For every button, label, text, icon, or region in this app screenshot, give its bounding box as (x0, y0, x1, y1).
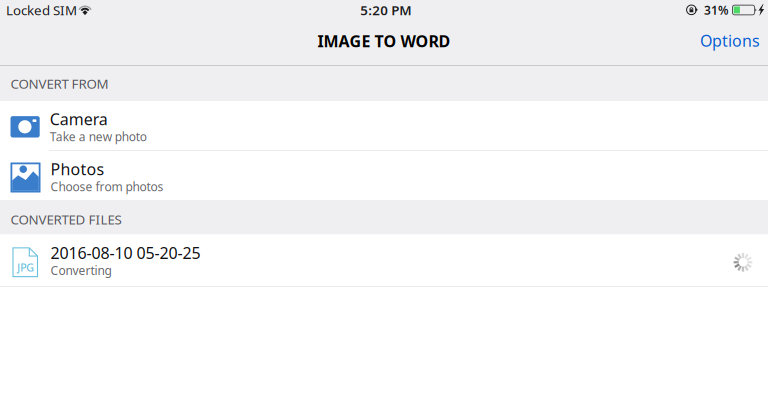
staticText: 5:20 PM (360, 1, 411, 19)
button[interactable]: Options (690, 21, 768, 60)
staticText: IMAGE TO WORD (317, 30, 450, 52)
staticText: 31% (704, 2, 729, 18)
staticText: 2016-08-10 05-20-25 (50, 242, 200, 263)
staticText: Locked SIM (6, 1, 77, 19)
staticText: CONVERTED FILES (10, 210, 121, 228)
staticText: JPG (17, 260, 34, 274)
staticText: Options (700, 30, 760, 51)
staticText: Take a new photo (50, 129, 147, 145)
staticText: Choose from photos (50, 179, 163, 195)
button[interactable]: Camera (0, 101, 768, 150)
staticText: Photos (50, 158, 104, 180)
staticText: CONVERT FROM (10, 75, 108, 92)
button[interactable]: Photos (0, 151, 768, 200)
staticText: Converting (50, 262, 111, 278)
staticText: Camera (50, 108, 108, 130)
button[interactable]: JPG (0, 234, 768, 286)
